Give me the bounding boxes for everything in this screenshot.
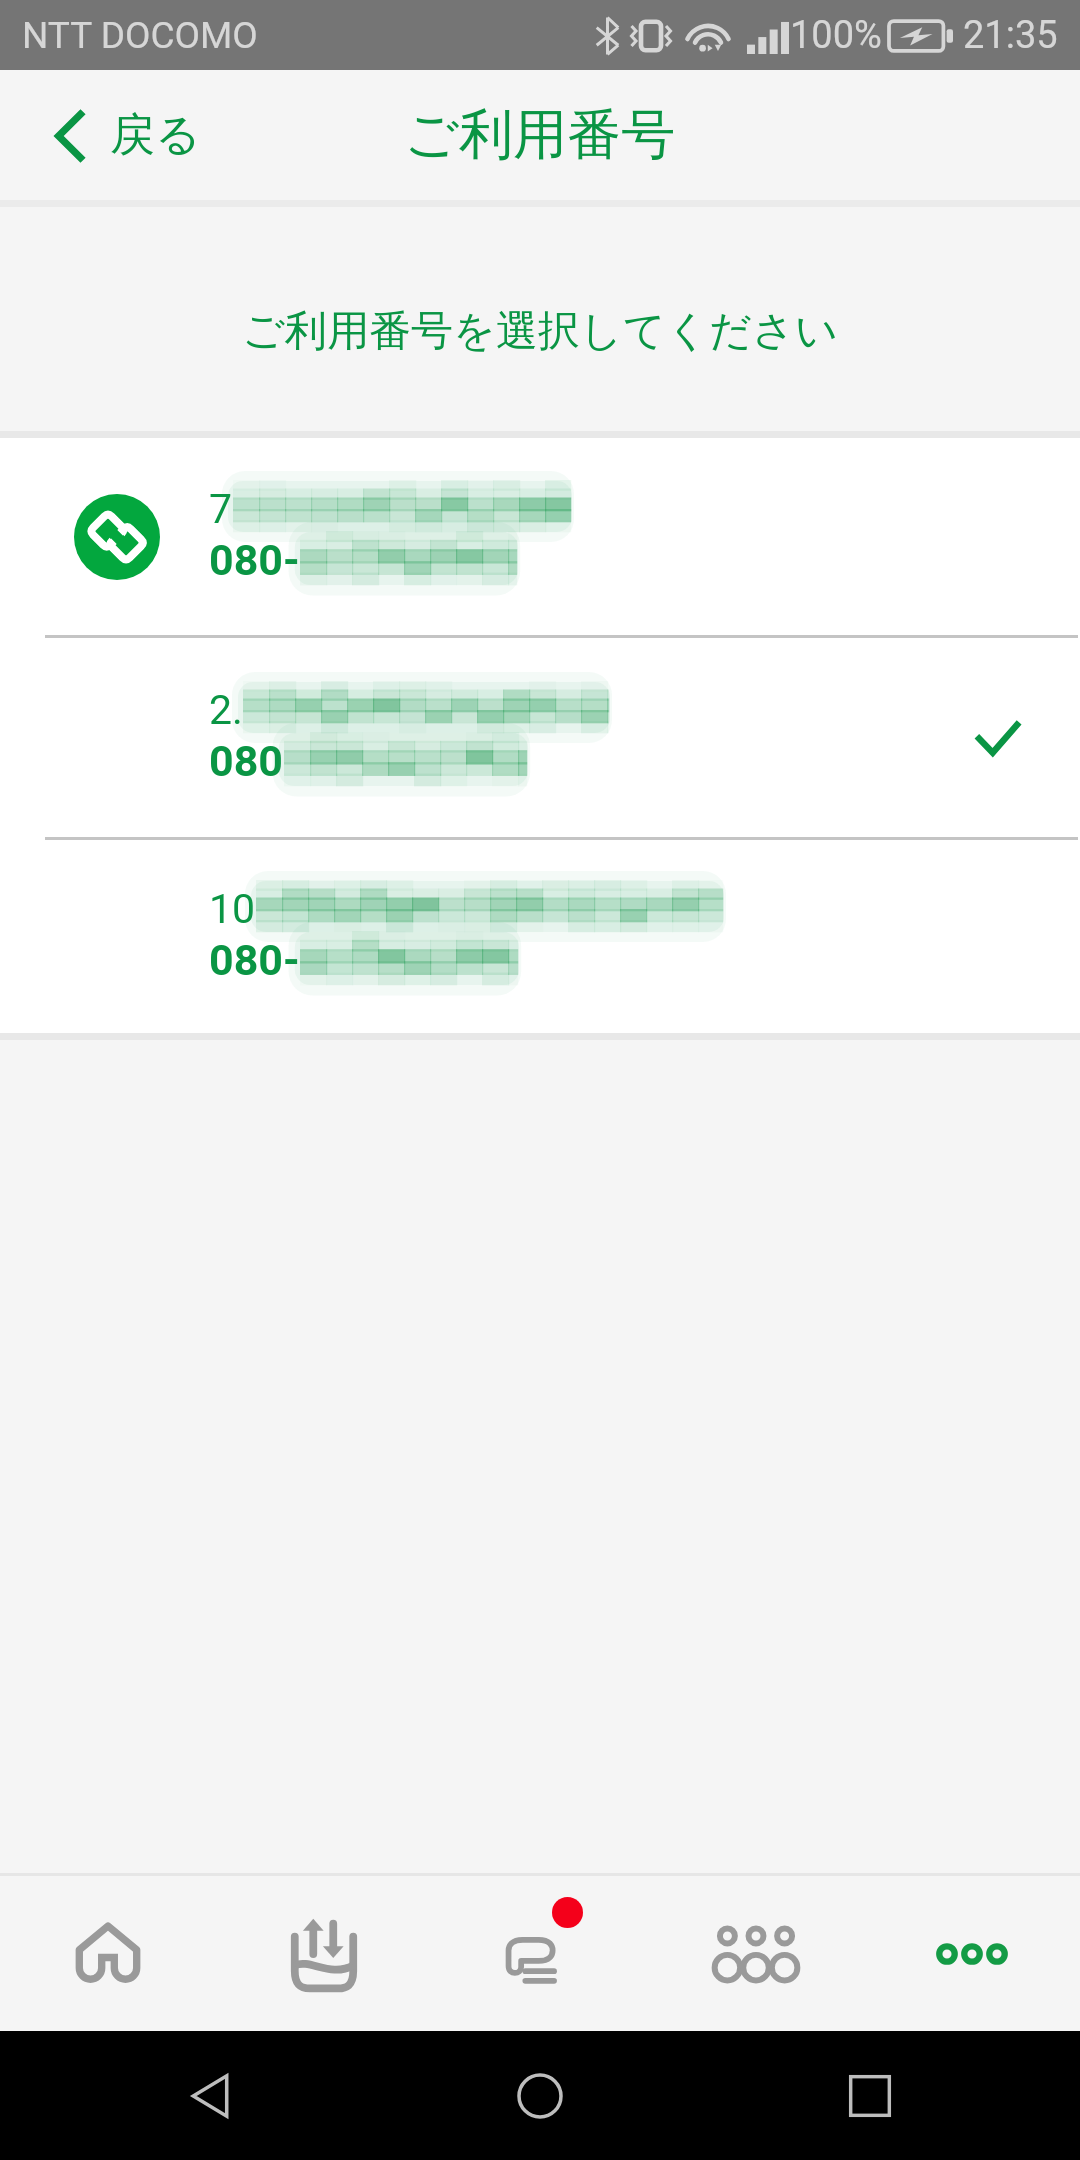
button[interactable]: Back [90,2031,330,2160]
button[interactable]: Transfer [216,1876,432,2031]
other: Selected [976,721,1020,754]
button[interactable]: 7 [0,438,1080,635]
button[interactable]: Messages [432,1876,648,2031]
button[interactable]: 2. [0,638,1080,837]
staticText: 戻る [110,107,202,164]
staticText: ご利用番号を選択してください [242,305,838,358]
button[interactable]: 戻る [0,87,232,184]
staticText: 2. [209,686,243,734]
button[interactable]: 10 [0,840,1080,1033]
button[interactable]: More [864,1876,1080,2031]
button[interactable]: Home [0,1876,216,2031]
button[interactable]: Recents [750,2031,990,2160]
staticText: 080- [209,535,300,585]
staticText: 10 [209,885,256,933]
button[interactable]: Home [420,2031,660,2160]
staticText: 080- [209,935,300,985]
staticText: NTT DOCOMO [22,14,258,57]
button[interactable]: Accounts [648,1876,864,2031]
staticText: 100% [790,13,882,58]
staticText: ご利用番号 [404,101,676,169]
staticText: 7 [209,485,233,533]
staticText: 21:35 [963,13,1058,58]
staticText: 080 [209,736,284,786]
